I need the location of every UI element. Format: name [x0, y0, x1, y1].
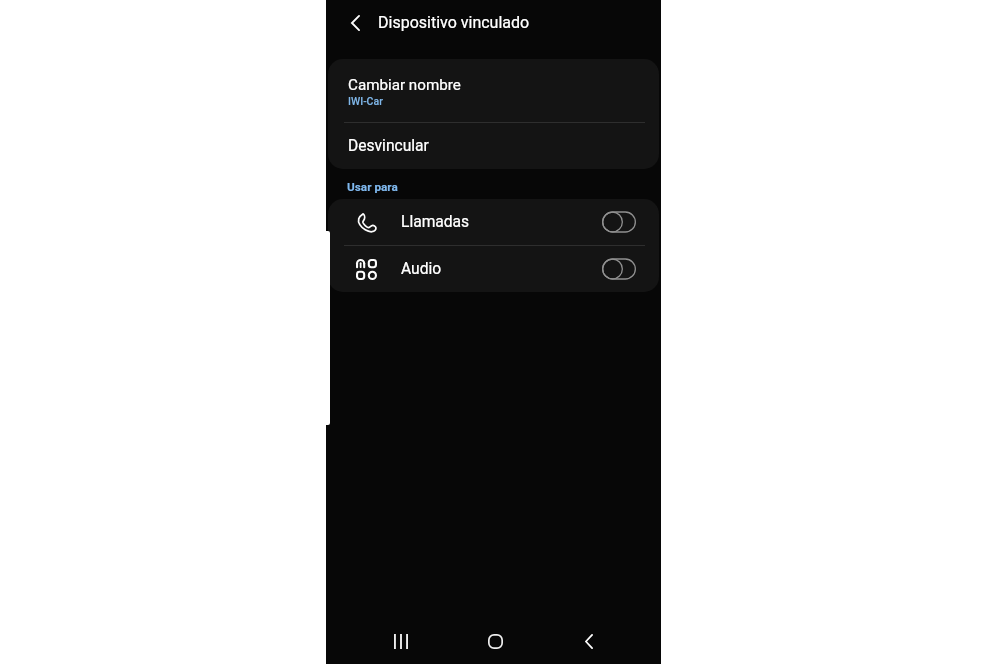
staticText: Audio: [401, 260, 442, 278]
button[interactable]: Cambiar nombre: [328, 59, 659, 122]
button[interactable]: Recent apps: [377, 617, 425, 664]
button[interactable]: Back: [565, 617, 613, 664]
staticText: Cambiar nombre: [348, 76, 461, 94]
staticText: Usar para: [347, 180, 398, 194]
button[interactable]: Audio: [328, 246, 659, 292]
button[interactable]: Llamadas: [328, 199, 659, 245]
staticText: IWI-Car: [348, 95, 383, 107]
button[interactable]: Desvincular: [328, 123, 659, 169]
staticText: Dispositivo vinculado: [378, 13, 530, 32]
staticText: Llamadas: [401, 213, 470, 231]
button[interactable]: Home: [471, 617, 519, 664]
button[interactable]: Back: [344, 11, 367, 34]
staticText: Desvincular: [348, 137, 429, 155]
